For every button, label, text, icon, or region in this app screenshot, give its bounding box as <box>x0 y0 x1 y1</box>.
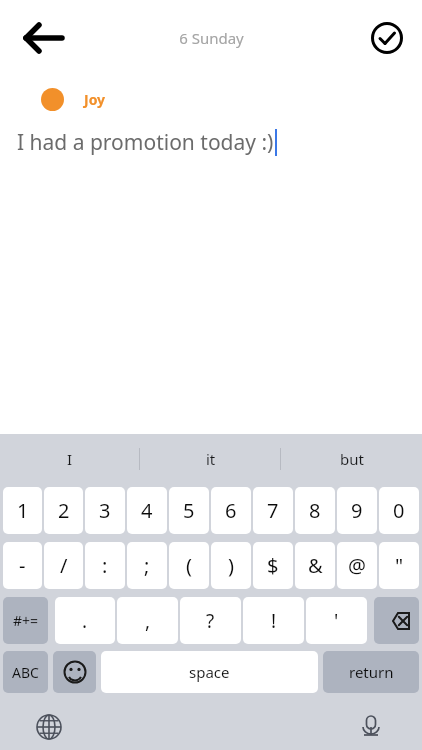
button[interactable]: Back <box>14 8 74 68</box>
button[interactable]: . <box>55 597 115 644</box>
staticText: 6 <box>225 497 237 524</box>
button[interactable]: 6 <box>211 487 251 534</box>
button[interactable]: 8 <box>295 487 335 534</box>
button[interactable]: #+= <box>3 597 48 644</box>
button[interactable]: space <box>101 651 318 693</box>
button[interactable]: ) <box>211 542 251 589</box>
staticText: " <box>395 552 404 579</box>
staticText: $ <box>267 552 279 579</box>
staticText: ! <box>271 608 277 634</box>
staticText: 8 <box>309 497 321 524</box>
staticText: 7 <box>267 497 279 524</box>
staticText: : <box>102 552 108 579</box>
button[interactable]: @ <box>337 542 377 589</box>
button[interactable]: , <box>117 597 178 644</box>
staticText: . <box>82 608 88 634</box>
button[interactable]: 7 <box>253 487 293 534</box>
button[interactable]: Backspace <box>374 597 419 644</box>
button[interactable]: Emoji <box>53 651 96 693</box>
staticText: 0 <box>393 497 405 524</box>
button[interactable]: 1 <box>3 487 42 534</box>
staticText: 5 <box>183 497 195 524</box>
button[interactable]: return <box>323 651 419 693</box>
button[interactable]: 5 <box>169 487 209 534</box>
button[interactable]: ( <box>169 542 209 589</box>
staticText: return <box>349 662 394 682</box>
staticText: 4 <box>141 497 153 524</box>
button[interactable]: 2 <box>44 487 83 534</box>
staticText: 3 <box>99 497 111 524</box>
button[interactable]: Voice input <box>348 704 394 750</box>
staticText: ? <box>206 608 215 634</box>
staticText: but <box>340 449 364 469</box>
button[interactable]: - <box>3 542 42 589</box>
staticText: it <box>206 449 216 469</box>
staticText: ABC <box>12 663 39 682</box>
button[interactable]: ABC <box>3 651 48 693</box>
staticText: / <box>60 552 68 579</box>
button[interactable]: Save <box>358 9 416 67</box>
staticText: ( <box>186 552 192 579</box>
staticText: Joy <box>84 90 106 109</box>
button[interactable]: Joy <box>41 87 106 111</box>
button[interactable]: 9 <box>337 487 377 534</box>
button[interactable]: it <box>140 434 281 483</box>
staticText: ) <box>228 552 234 579</box>
staticText: , <box>145 608 151 634</box>
staticText: 6 Sunday <box>179 28 244 48</box>
staticText: ; <box>144 552 150 579</box>
staticText: I had a promotion today :) <box>17 128 274 157</box>
button[interactable]: ? <box>180 597 241 644</box>
button[interactable]: I <box>0 434 140 483</box>
staticText: - <box>19 552 26 579</box>
button[interactable]: Change keyboard language <box>26 704 72 750</box>
staticText: & <box>308 552 323 579</box>
button[interactable]: " <box>379 542 419 589</box>
button[interactable]: / <box>44 542 83 589</box>
button[interactable]: : <box>85 542 125 589</box>
button[interactable]: ' <box>306 597 367 644</box>
staticText: space <box>189 662 230 682</box>
button[interactable]: 3 <box>85 487 125 534</box>
button[interactable]: & <box>295 542 335 589</box>
staticText: 9 <box>351 497 363 524</box>
staticText: ' <box>334 608 339 634</box>
staticText: @ <box>348 552 366 579</box>
button[interactable]: 4 <box>127 487 167 534</box>
button[interactable]: ; <box>127 542 167 589</box>
staticText: 1 <box>17 497 29 524</box>
button[interactable]: but <box>281 434 422 483</box>
button[interactable]: ! <box>243 597 304 644</box>
staticText: I <box>67 449 73 469</box>
staticText: #+= <box>13 611 39 630</box>
button[interactable]: $ <box>253 542 293 589</box>
button[interactable]: 0 <box>379 487 419 534</box>
staticText: 2 <box>58 497 70 524</box>
